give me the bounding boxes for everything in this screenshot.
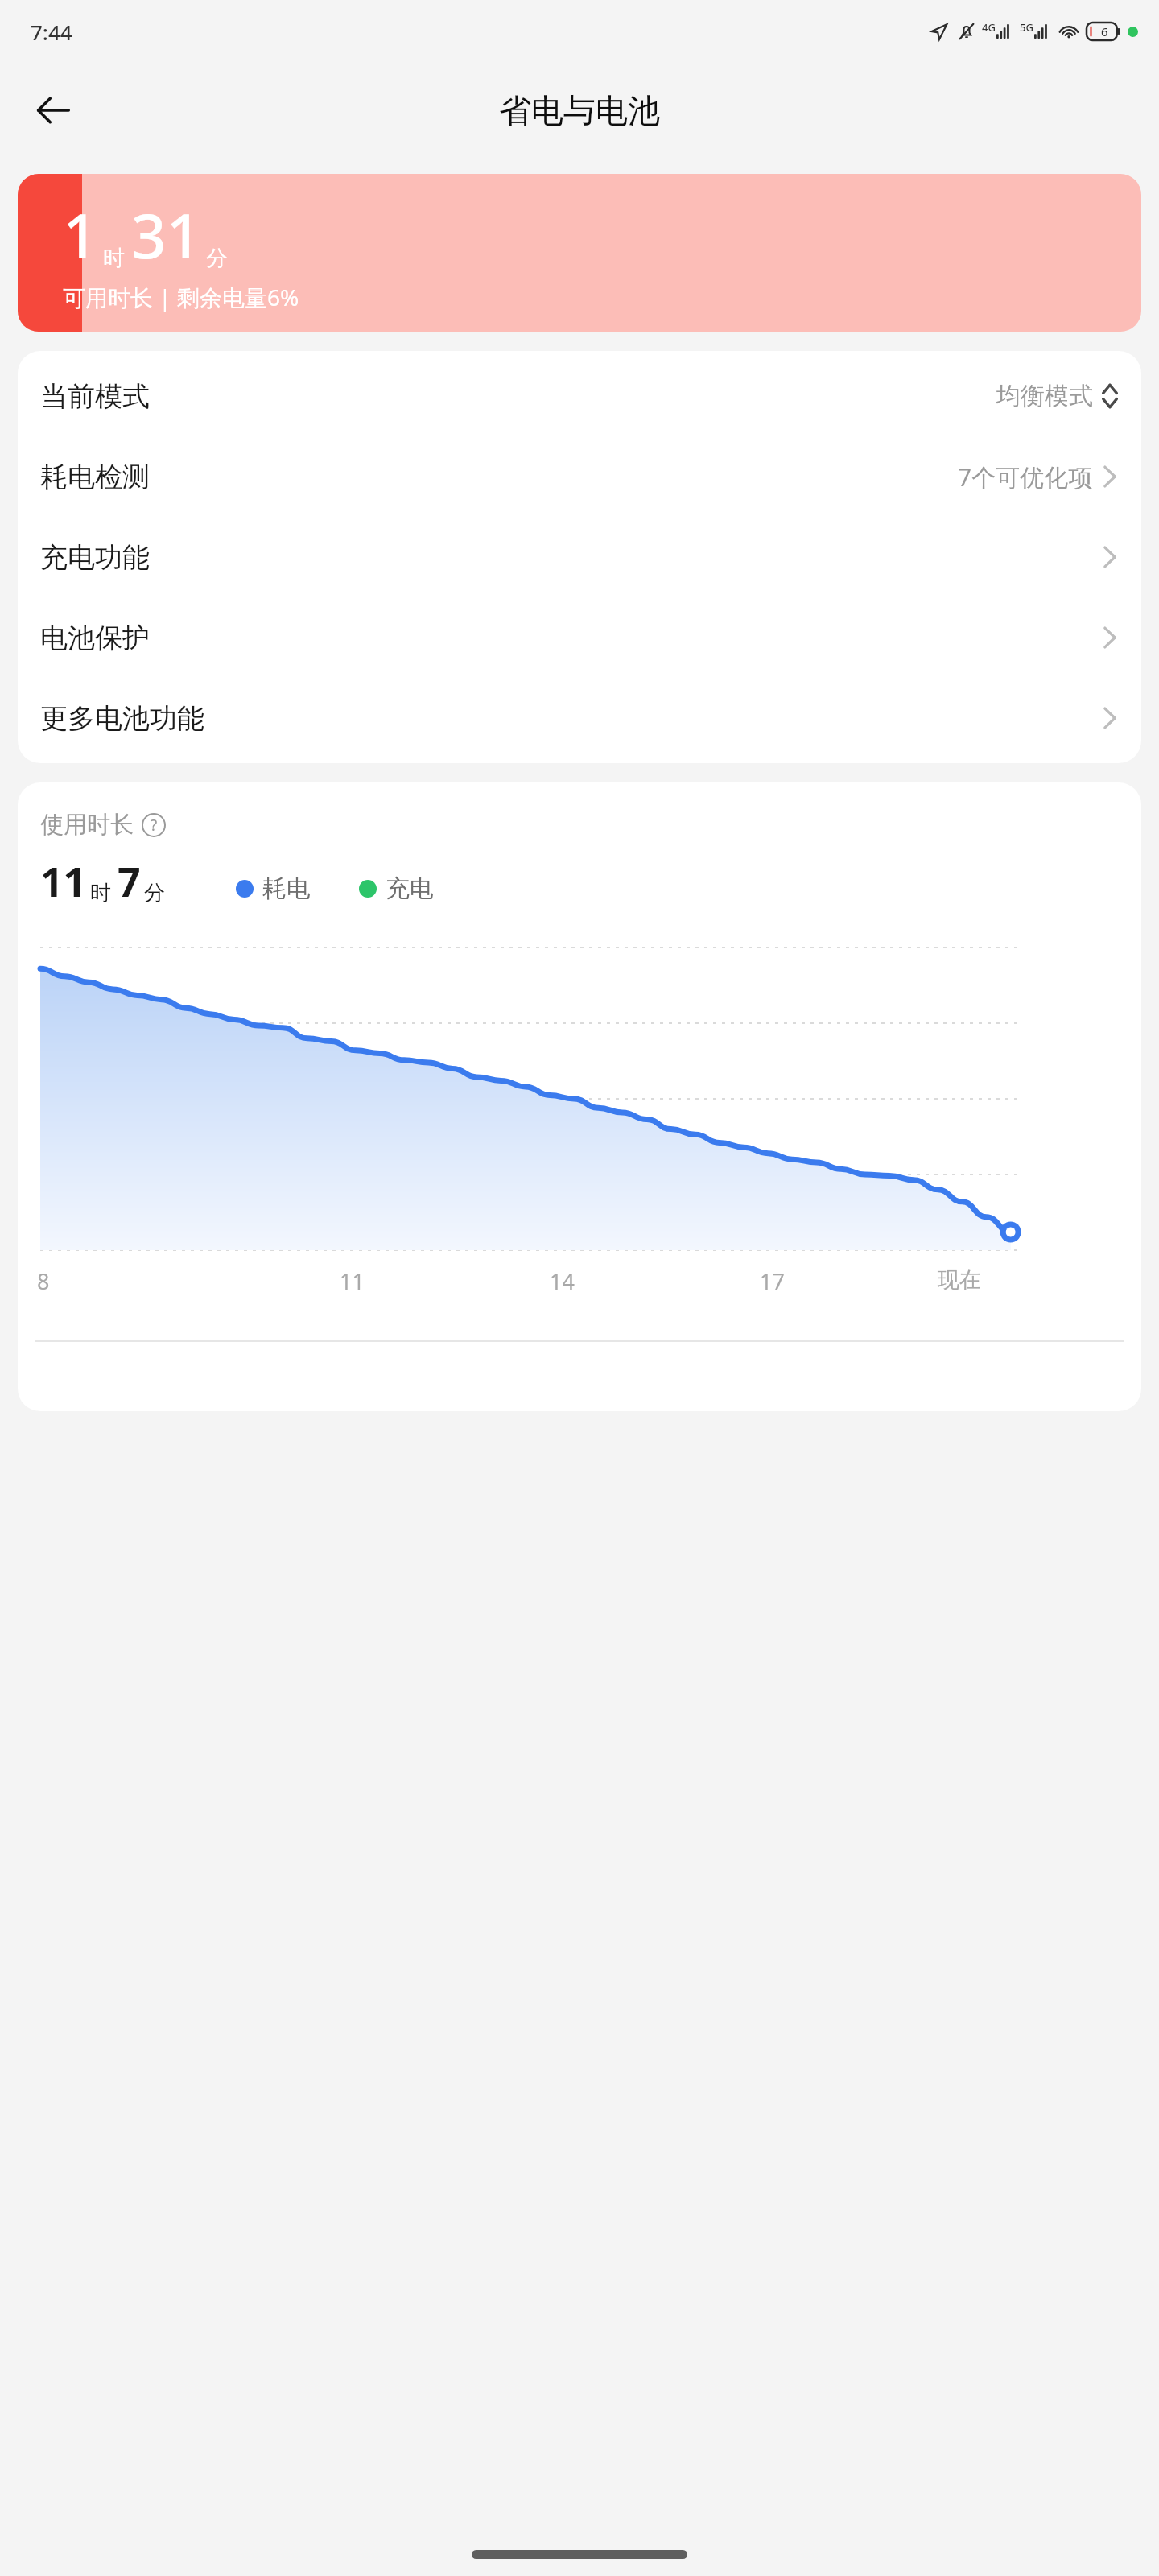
- staticText: 省电与电池: [499, 90, 660, 130]
- staticText: 1: [63, 193, 98, 277]
- staticText: 分: [144, 880, 165, 906]
- staticText: 耗电检测: [40, 460, 150, 494]
- staticText: ?: [151, 815, 158, 836]
- staticText: 8: [37, 1266, 50, 1296]
- button[interactable]: 电池保护: [18, 597, 1141, 678]
- staticText: 7:44: [31, 18, 72, 46]
- button[interactable]: 当前模式: [18, 356, 1141, 436]
- staticText: 耗电: [262, 873, 311, 904]
- staticText: 更多电池功能: [40, 701, 204, 736]
- staticText: 14: [550, 1266, 575, 1296]
- staticText: 11: [40, 854, 87, 909]
- button[interactable]: 更多电池功能: [18, 678, 1141, 758]
- staticText: 当前模式: [40, 379, 150, 414]
- staticText: 4G: [982, 20, 996, 35]
- staticText: 17: [760, 1266, 785, 1296]
- staticText: 11: [340, 1266, 365, 1296]
- button[interactable]: 充电功能: [18, 517, 1141, 597]
- button[interactable]: 说明: [142, 813, 166, 837]
- staticText: 可用时长 | 剩余电量6%: [63, 282, 299, 312]
- button[interactable]: 返回: [23, 80, 84, 141]
- staticText: 时: [103, 245, 125, 272]
- staticText: 使用时长: [40, 810, 134, 840]
- staticText: 7: [118, 854, 141, 909]
- staticText: 分: [206, 245, 228, 272]
- staticText: 5G: [1020, 20, 1033, 35]
- staticText: 电池保护: [40, 621, 150, 655]
- staticText: 均衡模式: [996, 381, 1093, 411]
- staticText: 6: [1101, 23, 1108, 39]
- staticText: 充电功能: [40, 540, 150, 575]
- button[interactable]: 耗电检测: [18, 436, 1141, 517]
- staticText: 现在: [938, 1266, 981, 1294]
- button[interactable]: 1: [18, 174, 1141, 332]
- staticText: 时: [90, 880, 111, 906]
- staticText: 7个可优化项: [958, 460, 1093, 493]
- staticText: 31: [131, 193, 201, 277]
- staticText: 充电: [386, 873, 434, 904]
